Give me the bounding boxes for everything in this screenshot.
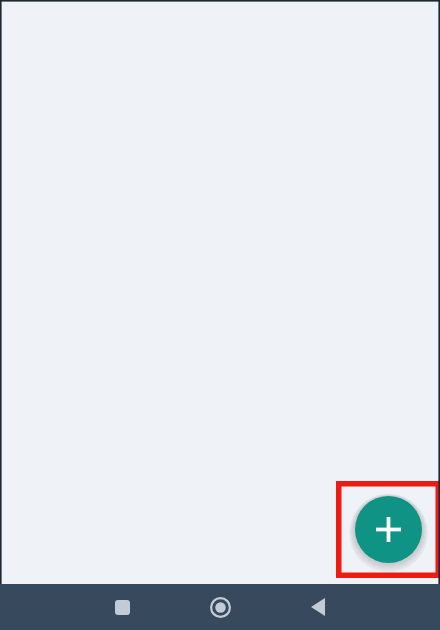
button[interactable]: Recent apps [98,584,146,630]
button[interactable]: Home [196,584,244,630]
button[interactable]: Back [294,584,342,630]
button[interactable]: Add [355,496,422,563]
